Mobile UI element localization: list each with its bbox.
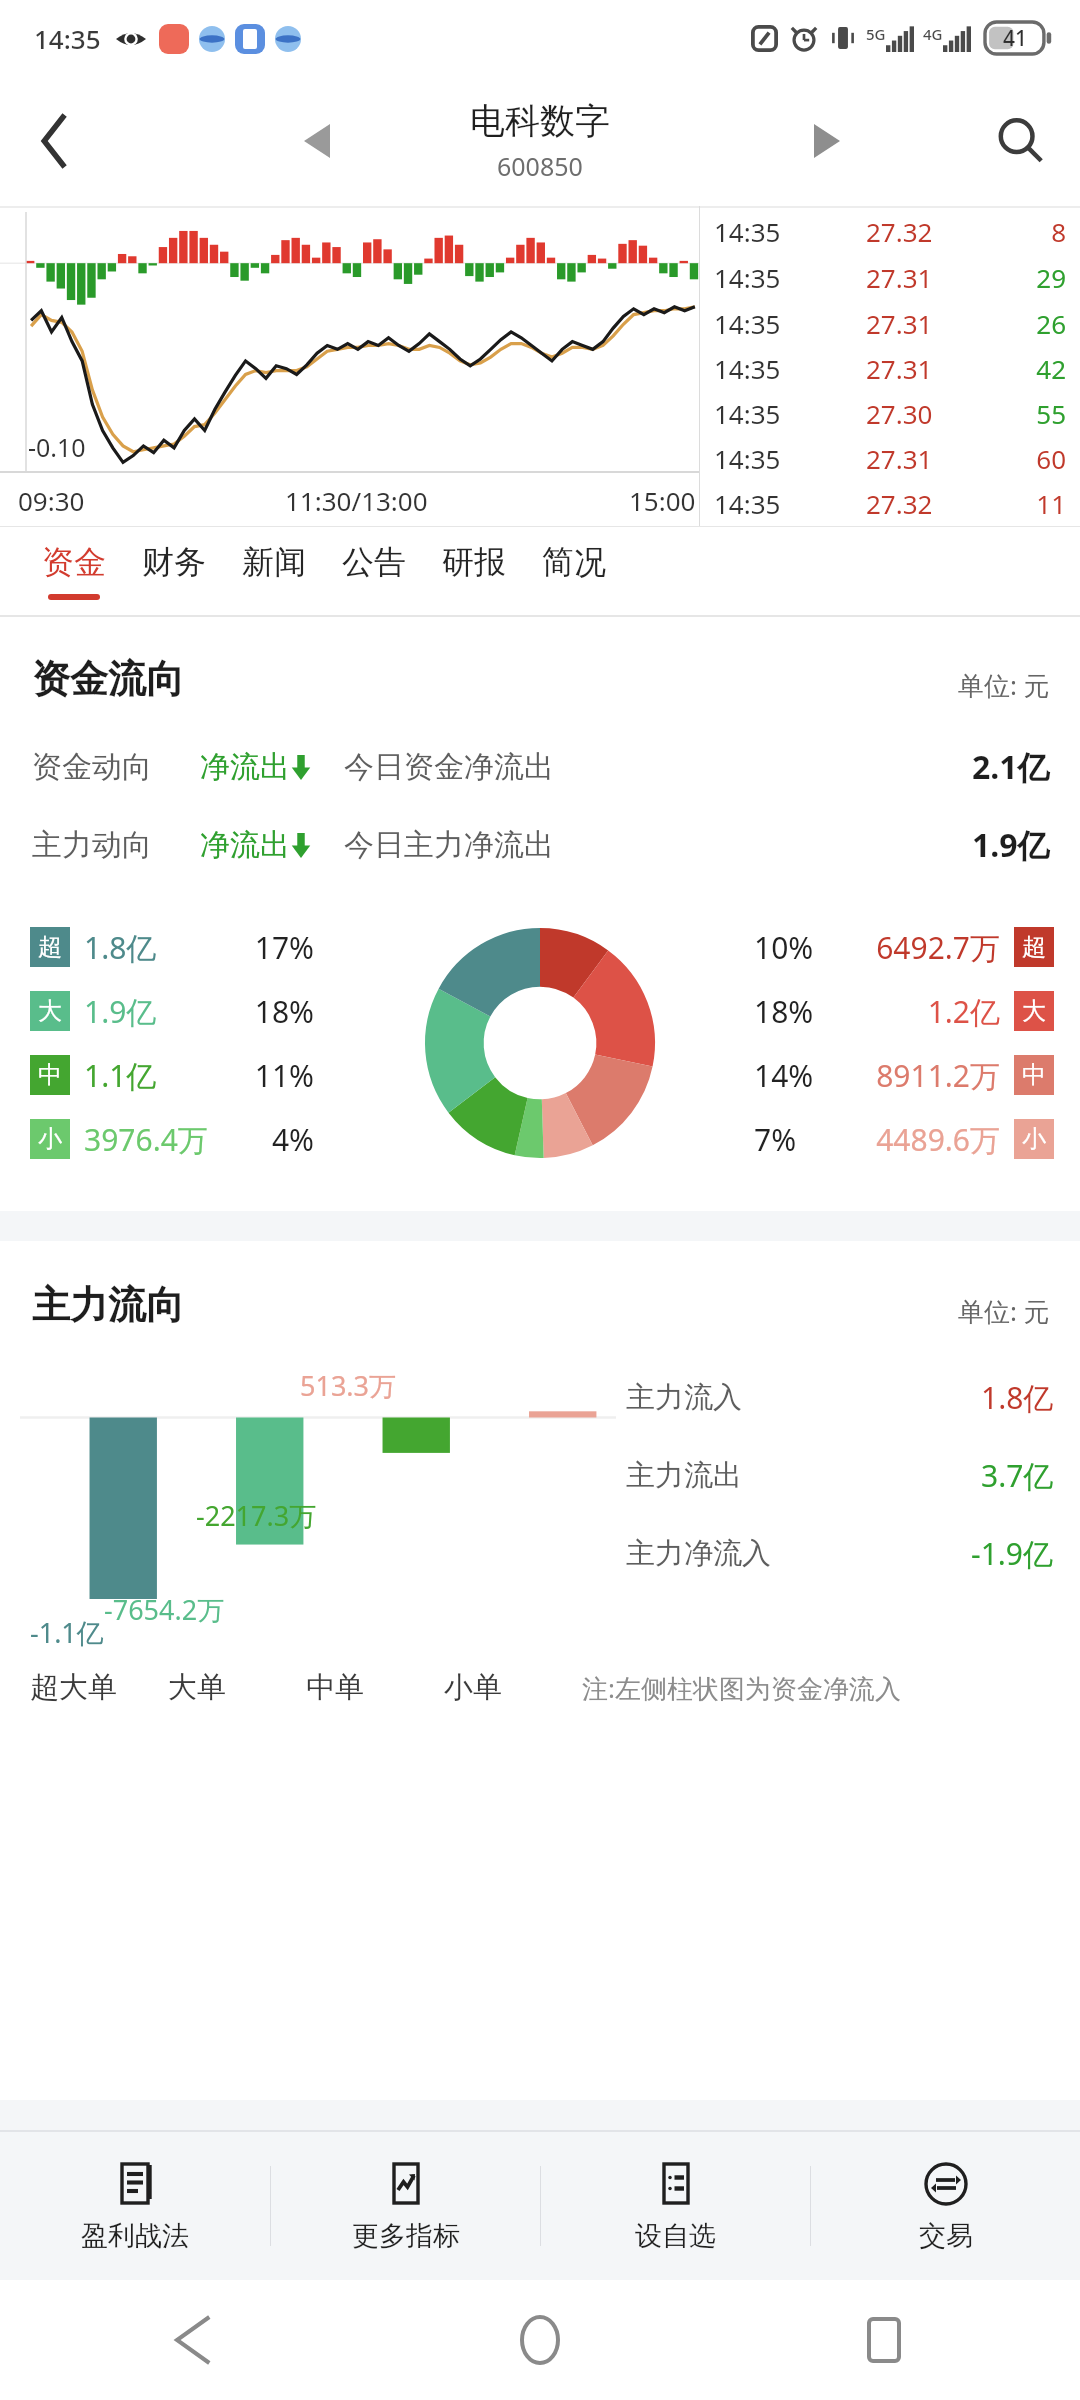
staticText: 盈利战法 (81, 2219, 189, 2253)
staticText: 11:30/13:00 (285, 483, 428, 518)
staticText: -0.10 (28, 430, 86, 464)
staticText: 电科数字 (470, 99, 610, 143)
staticText: 大 (38, 996, 62, 1026)
staticText: 14% (754, 1055, 834, 1096)
staticText: 27.31 (866, 306, 933, 341)
staticText: -2217.3万 (196, 1497, 317, 1534)
button[interactable]: 公告 (324, 527, 424, 615)
staticText: 新闻 (242, 542, 306, 582)
staticText: 14:35 (714, 306, 781, 341)
staticText: 14:35 (714, 486, 781, 521)
staticText: 更多指标 (352, 2219, 460, 2253)
staticText: 1.8亿 (981, 1377, 1054, 1418)
staticText: 4489.6万 (834, 1119, 1000, 1160)
staticText: 主力流出 (626, 1457, 742, 1494)
staticText: 研报 (442, 542, 506, 582)
staticText: 1.9亿 (972, 823, 1050, 867)
staticText: 超大单 (30, 1669, 168, 1706)
staticText: 小 (38, 1124, 62, 1154)
staticText: 600850 (497, 149, 583, 183)
staticText: 交易 (919, 2219, 973, 2253)
button[interactable]: 新闻 (224, 527, 324, 615)
button[interactable]: 盈利战法 (0, 2132, 270, 2280)
button[interactable]: Back (151, 2295, 241, 2385)
staticText: 14:35 (714, 441, 781, 476)
staticText: 1.8亿 (84, 927, 234, 968)
staticText: 27.32 (866, 486, 933, 521)
button[interactable]: 财务 (124, 527, 224, 615)
staticText: 60 (1018, 441, 1066, 476)
staticText: 2.1亿 (972, 745, 1050, 789)
staticText: -1.9亿 (971, 1533, 1054, 1574)
staticText: 注:左侧柱状图为资金净流入 (582, 1670, 901, 1706)
staticText: 净流出 (200, 748, 290, 786)
staticText: 27.31 (866, 441, 933, 476)
staticText: 公告 (342, 542, 406, 582)
staticText: 4G (923, 24, 943, 44)
button[interactable]: 研报 (424, 527, 524, 615)
staticText: 3976.4万 (84, 1119, 234, 1160)
button[interactable]: Back (0, 76, 110, 206)
staticText: 主力流向 (32, 1281, 184, 1329)
staticText: 小 (1022, 1124, 1046, 1154)
button[interactable]: Recents (839, 2295, 929, 2385)
staticText: 09:30 (18, 483, 85, 518)
button[interactable]: 简况 (524, 527, 624, 615)
button[interactable]: 交易 (811, 2132, 1080, 2280)
staticText: 8 (1018, 214, 1066, 249)
staticText: 资金流向 (32, 655, 184, 703)
button[interactable]: 资金 (24, 527, 124, 615)
staticText: 3.7亿 (981, 1455, 1054, 1496)
staticText: 中 (38, 1060, 62, 1090)
staticText: 41 (985, 24, 1045, 53)
staticText: 15:00 (629, 483, 696, 518)
staticText: -1.1亿 (30, 1614, 104, 1651)
staticText: 1.9亿 (84, 991, 234, 1032)
staticText: 主力净流入 (626, 1535, 771, 1572)
button[interactable]: Home (495, 2295, 585, 2385)
staticText: 27.31 (866, 260, 933, 295)
staticText: 14:35 (714, 260, 781, 295)
staticText: 18% (754, 991, 834, 1032)
staticText: 14:35 (714, 214, 781, 249)
staticText: 1.2亿 (834, 991, 1000, 1032)
staticText: 财务 (142, 542, 206, 582)
staticText: -7654.2万 (104, 1591, 225, 1628)
staticText: 513.3万 (300, 1367, 397, 1404)
staticText: 6492.7万 (834, 927, 1000, 968)
staticText: 1.1亿 (84, 1055, 234, 1096)
staticText: 7% (754, 1119, 834, 1160)
staticText: 超 (1022, 932, 1046, 962)
staticText: 资金 (42, 542, 106, 582)
staticText: 14:35 (714, 351, 781, 386)
staticText: 大 (1022, 996, 1046, 1026)
staticText: 单位: 元 (958, 667, 1050, 703)
button[interactable]: 更多指标 (271, 2132, 540, 2280)
button[interactable]: Search (960, 76, 1080, 206)
staticText: 今日主力净流出 (344, 826, 554, 864)
staticText: 27.32 (866, 214, 933, 249)
staticText: 10% (754, 927, 834, 968)
staticText: 18% (234, 991, 314, 1032)
staticText: 主力流入 (626, 1379, 742, 1416)
staticText: 今日资金净流出 (344, 748, 554, 786)
staticText: 净流出 (200, 826, 290, 864)
staticText: 超 (38, 932, 62, 962)
staticText: 4% (234, 1119, 314, 1160)
staticText: 26 (1018, 306, 1066, 341)
staticText: 资金动向 (32, 748, 152, 786)
staticText: 17% (234, 927, 314, 968)
staticText: 27.30 (866, 396, 933, 431)
button[interactable]: 设自选 (541, 2132, 810, 2280)
staticText: 单位: 元 (958, 1293, 1050, 1329)
staticText: 中 (1022, 1060, 1046, 1090)
staticText: 主力动向 (32, 826, 152, 864)
staticText: 11% (234, 1055, 314, 1096)
button[interactable]: Next stock (782, 86, 872, 196)
staticText: 29 (1018, 260, 1066, 295)
staticText: 设自选 (635, 2219, 716, 2253)
button[interactable]: Previous stock (272, 86, 362, 196)
staticText: 11 (1018, 486, 1066, 521)
staticText: 27.31 (866, 351, 933, 386)
staticText: 14:35 (714, 396, 781, 431)
